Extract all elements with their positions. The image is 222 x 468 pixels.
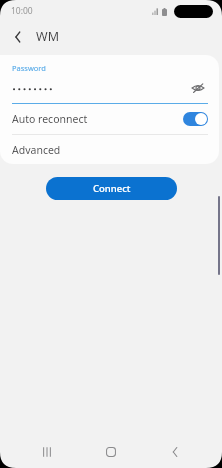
button[interactable]: Back (9, 27, 29, 47)
button[interactable]: Advanced (0, 135, 219, 164)
staticText: Password (12, 63, 46, 73)
staticText: Auto reconnect (12, 112, 88, 126)
button[interactable]: Auto reconnect (0, 104, 219, 134)
staticText: WM (36, 28, 59, 45)
staticText: Advanced (12, 143, 61, 157)
button[interactable]: Password (0, 55, 219, 104)
button[interactable]: Show password (188, 78, 208, 98)
button[interactable]: Auto reconnect toggle (183, 112, 208, 126)
button[interactable]: Connect (46, 177, 177, 200)
button[interactable]: Home (93, 435, 129, 468)
button[interactable]: Back (158, 435, 194, 468)
staticText: 10:00 (11, 5, 33, 17)
staticText: Connect (93, 182, 131, 195)
button[interactable]: Recent apps (29, 435, 65, 468)
